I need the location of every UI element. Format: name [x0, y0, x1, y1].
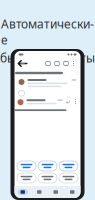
button[interactable]: Архивировать: [43, 59, 52, 68]
button[interactable]: Почта: [14, 186, 31, 198]
button[interactable]: Письмо: [61, 59, 70, 68]
button[interactable]: Чат: [31, 186, 47, 198]
button[interactable]: Комнаты: [47, 186, 64, 198]
button[interactable]: Встречи: [64, 186, 80, 198]
staticText: ↵: [66, 99, 70, 105]
button[interactable]: Ещё: [70, 59, 76, 68]
staticText: ☆: [75, 70, 80, 76]
button[interactable]: Быстрый ответ: [59, 161, 78, 171]
button[interactable]: Быстрый ответ: [38, 161, 57, 171]
button[interactable]: Назад: [18, 59, 26, 67]
button[interactable]: Быстрый ответ: [17, 161, 36, 171]
button[interactable]: Быстрый ответ: [38, 173, 57, 183]
button[interactable]: В избранное: [75, 70, 80, 75]
button[interactable]: Быстрый ответ: [17, 173, 36, 183]
staticText: Автоматические: [1, 16, 94, 48]
button[interactable]: Быстрый ответ: [59, 173, 78, 183]
button[interactable]: Удалить: [52, 59, 61, 68]
staticText: быстрые ответы: [0, 50, 95, 66]
